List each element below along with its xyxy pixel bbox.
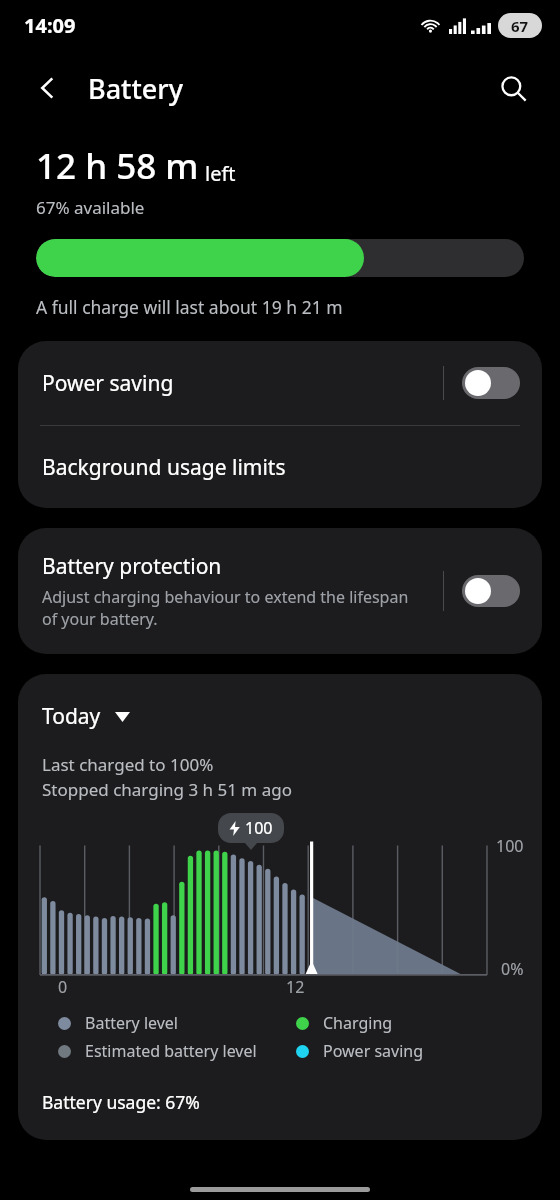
staticText: 0	[58, 976, 68, 998]
staticText: 12	[286, 976, 305, 998]
button[interactable]: Background usage limits	[18, 426, 542, 508]
staticText: Last charged to 100%	[42, 753, 214, 776]
button[interactable]: Today	[18, 696, 154, 737]
staticText: Power saving	[42, 369, 443, 398]
staticText: Today	[42, 702, 101, 731]
button[interactable]: Back	[26, 66, 70, 110]
staticText: Background usage limits	[42, 453, 286, 482]
staticText: Battery usage: 67%	[42, 1090, 200, 1114]
staticText: Adjust charging behaviour to extend the …	[42, 586, 409, 630]
staticText: Battery protection	[42, 552, 222, 581]
staticText: Stopped charging 3 h 51 m ago	[42, 778, 292, 801]
button[interactable]: Power saving	[18, 341, 542, 425]
staticText: 67	[511, 16, 529, 36]
staticText: 67% available	[36, 196, 145, 219]
staticText: Power saving	[323, 1040, 424, 1062]
staticText: Battery level	[85, 1012, 178, 1034]
staticText: Charging	[323, 1012, 393, 1034]
staticText: Battery	[88, 70, 183, 107]
staticText: left	[205, 160, 236, 187]
staticText: A full charge will last about 19 h 21 m	[36, 295, 343, 319]
staticText: 100	[245, 817, 273, 839]
staticText: 12 h 58 m	[36, 142, 199, 190]
staticText: 14:09	[24, 12, 76, 39]
button[interactable]: Search	[490, 65, 536, 111]
button[interactable]: Battery protection	[18, 528, 542, 654]
staticText: Estimated battery level	[85, 1040, 257, 1062]
staticText: 100	[496, 835, 524, 857]
staticText: 0%	[501, 958, 524, 980]
